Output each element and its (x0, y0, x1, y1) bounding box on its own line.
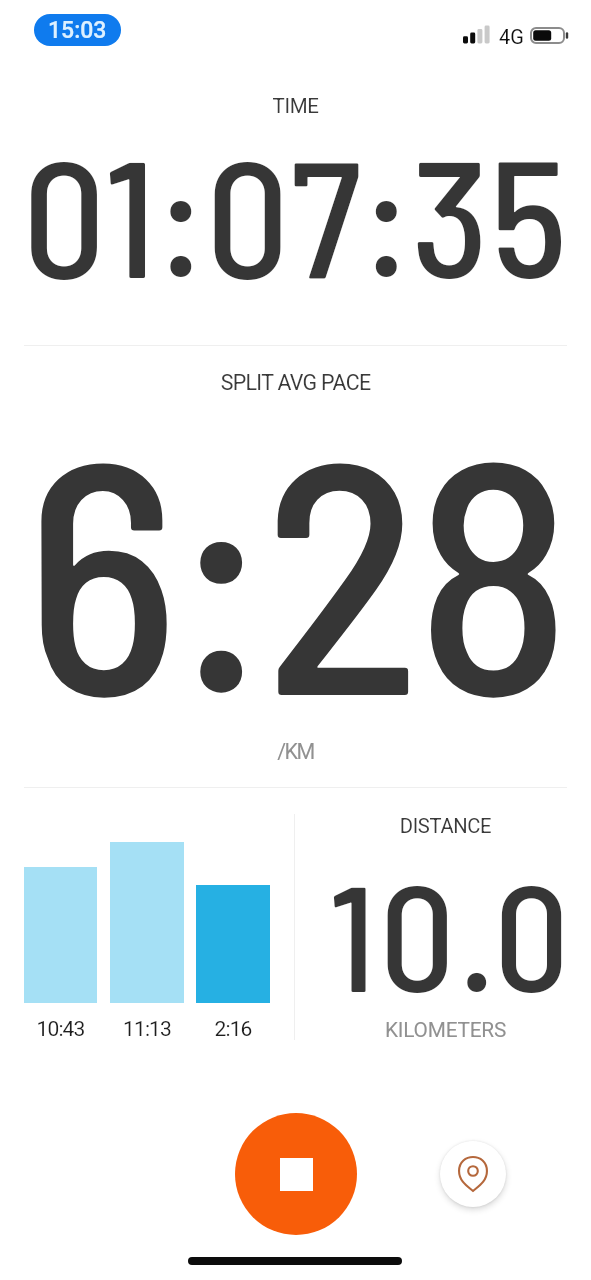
staticText: /KM (0, 739, 591, 764)
button[interactable]: Show map location (440, 1141, 506, 1207)
staticText: DISTANCE (300, 814, 591, 838)
staticText: 6:28 (0, 368, 591, 760)
staticText: 15:03 (48, 17, 107, 44)
button[interactable]: Stop workout (235, 1113, 357, 1235)
staticText: 10:43 (24, 1017, 97, 1042)
staticText: 10.0 (306, 844, 591, 1022)
staticText: KILOMETERS (300, 1018, 591, 1042)
staticText: SPLIT AVG PACE (0, 370, 591, 395)
staticText: 4G (499, 25, 524, 48)
staticText: 2:16 (196, 1017, 270, 1042)
staticText: TIME (0, 94, 591, 118)
staticText: 01:07:35 (0, 114, 591, 311)
staticText: 11:13 (110, 1017, 184, 1042)
